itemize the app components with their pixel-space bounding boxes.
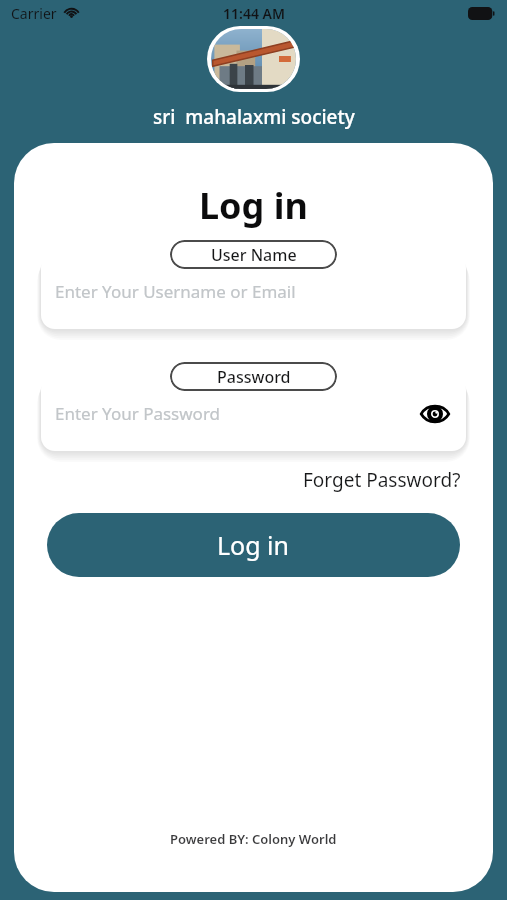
staticText: Forget Password? bbox=[303, 467, 461, 493]
staticText: Log in bbox=[217, 528, 290, 562]
staticText: 11:44 AM bbox=[223, 4, 285, 23]
staticText: Password bbox=[217, 366, 291, 388]
button[interactable]: Log in bbox=[47, 513, 460, 577]
button[interactable]: Show password bbox=[418, 397, 452, 431]
button[interactable]: Forget Password? bbox=[299, 463, 465, 497]
staticText: Carrier bbox=[11, 4, 57, 23]
staticText: Log in bbox=[199, 181, 308, 230]
staticText: sri mahalaxmi society bbox=[153, 104, 355, 130]
staticText: Enter Your Username or Email bbox=[55, 280, 296, 303]
staticText: User Name bbox=[211, 244, 297, 266]
staticText: Enter Your Password bbox=[55, 402, 221, 425]
staticText: Powered BY: Colony World bbox=[170, 830, 337, 848]
button[interactable]: Enter Your Username or Email bbox=[41, 254, 466, 329]
button[interactable]: Enter Your Password bbox=[41, 376, 466, 451]
